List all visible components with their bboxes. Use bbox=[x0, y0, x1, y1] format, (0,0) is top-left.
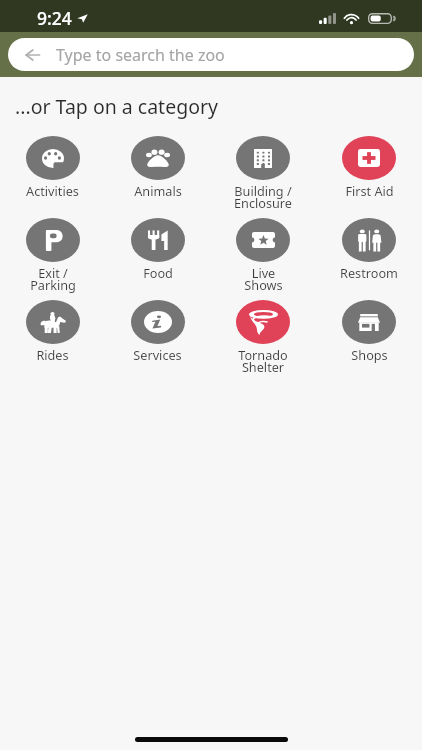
staticText: Tornado Shelter bbox=[238, 346, 288, 376]
button[interactable]: Back bbox=[8, 38, 56, 71]
staticText: Shops bbox=[351, 346, 388, 363]
button[interactable]: Live Shows bbox=[210, 218, 316, 300]
button[interactable]: Restroom bbox=[316, 218, 422, 300]
button[interactable]: Food bbox=[105, 218, 210, 300]
staticText: 9:24 bbox=[37, 6, 72, 30]
button[interactable]: Services bbox=[105, 300, 210, 382]
button[interactable]: Animals bbox=[105, 136, 210, 218]
staticText: Food bbox=[143, 264, 173, 281]
button[interactable]: Activities bbox=[0, 136, 105, 218]
staticText: Services bbox=[133, 346, 182, 363]
staticText: First Aid bbox=[345, 182, 394, 199]
staticText: Restroom bbox=[340, 264, 398, 281]
button[interactable]: Back bbox=[8, 38, 414, 71]
staticText: Animals bbox=[134, 182, 182, 199]
staticText: Building / Enclosure bbox=[234, 182, 292, 212]
button[interactable]: Shops bbox=[316, 300, 422, 382]
button[interactable]: Rides bbox=[0, 300, 105, 382]
staticText: Live Shows bbox=[244, 264, 283, 294]
staticText: Type to search the zoo bbox=[56, 44, 225, 66]
button[interactable]: Building / Enclosure bbox=[210, 136, 316, 218]
staticText: Rides bbox=[36, 346, 69, 363]
staticText: ...or Tap on a category bbox=[15, 93, 218, 120]
button[interactable]: First Aid bbox=[316, 136, 422, 218]
staticText: Exit / Parking bbox=[30, 264, 76, 294]
staticText: Activities bbox=[26, 182, 79, 199]
button[interactable]: Tornado Shelter bbox=[210, 300, 316, 382]
button[interactable]: Exit / Parking bbox=[0, 218, 105, 300]
